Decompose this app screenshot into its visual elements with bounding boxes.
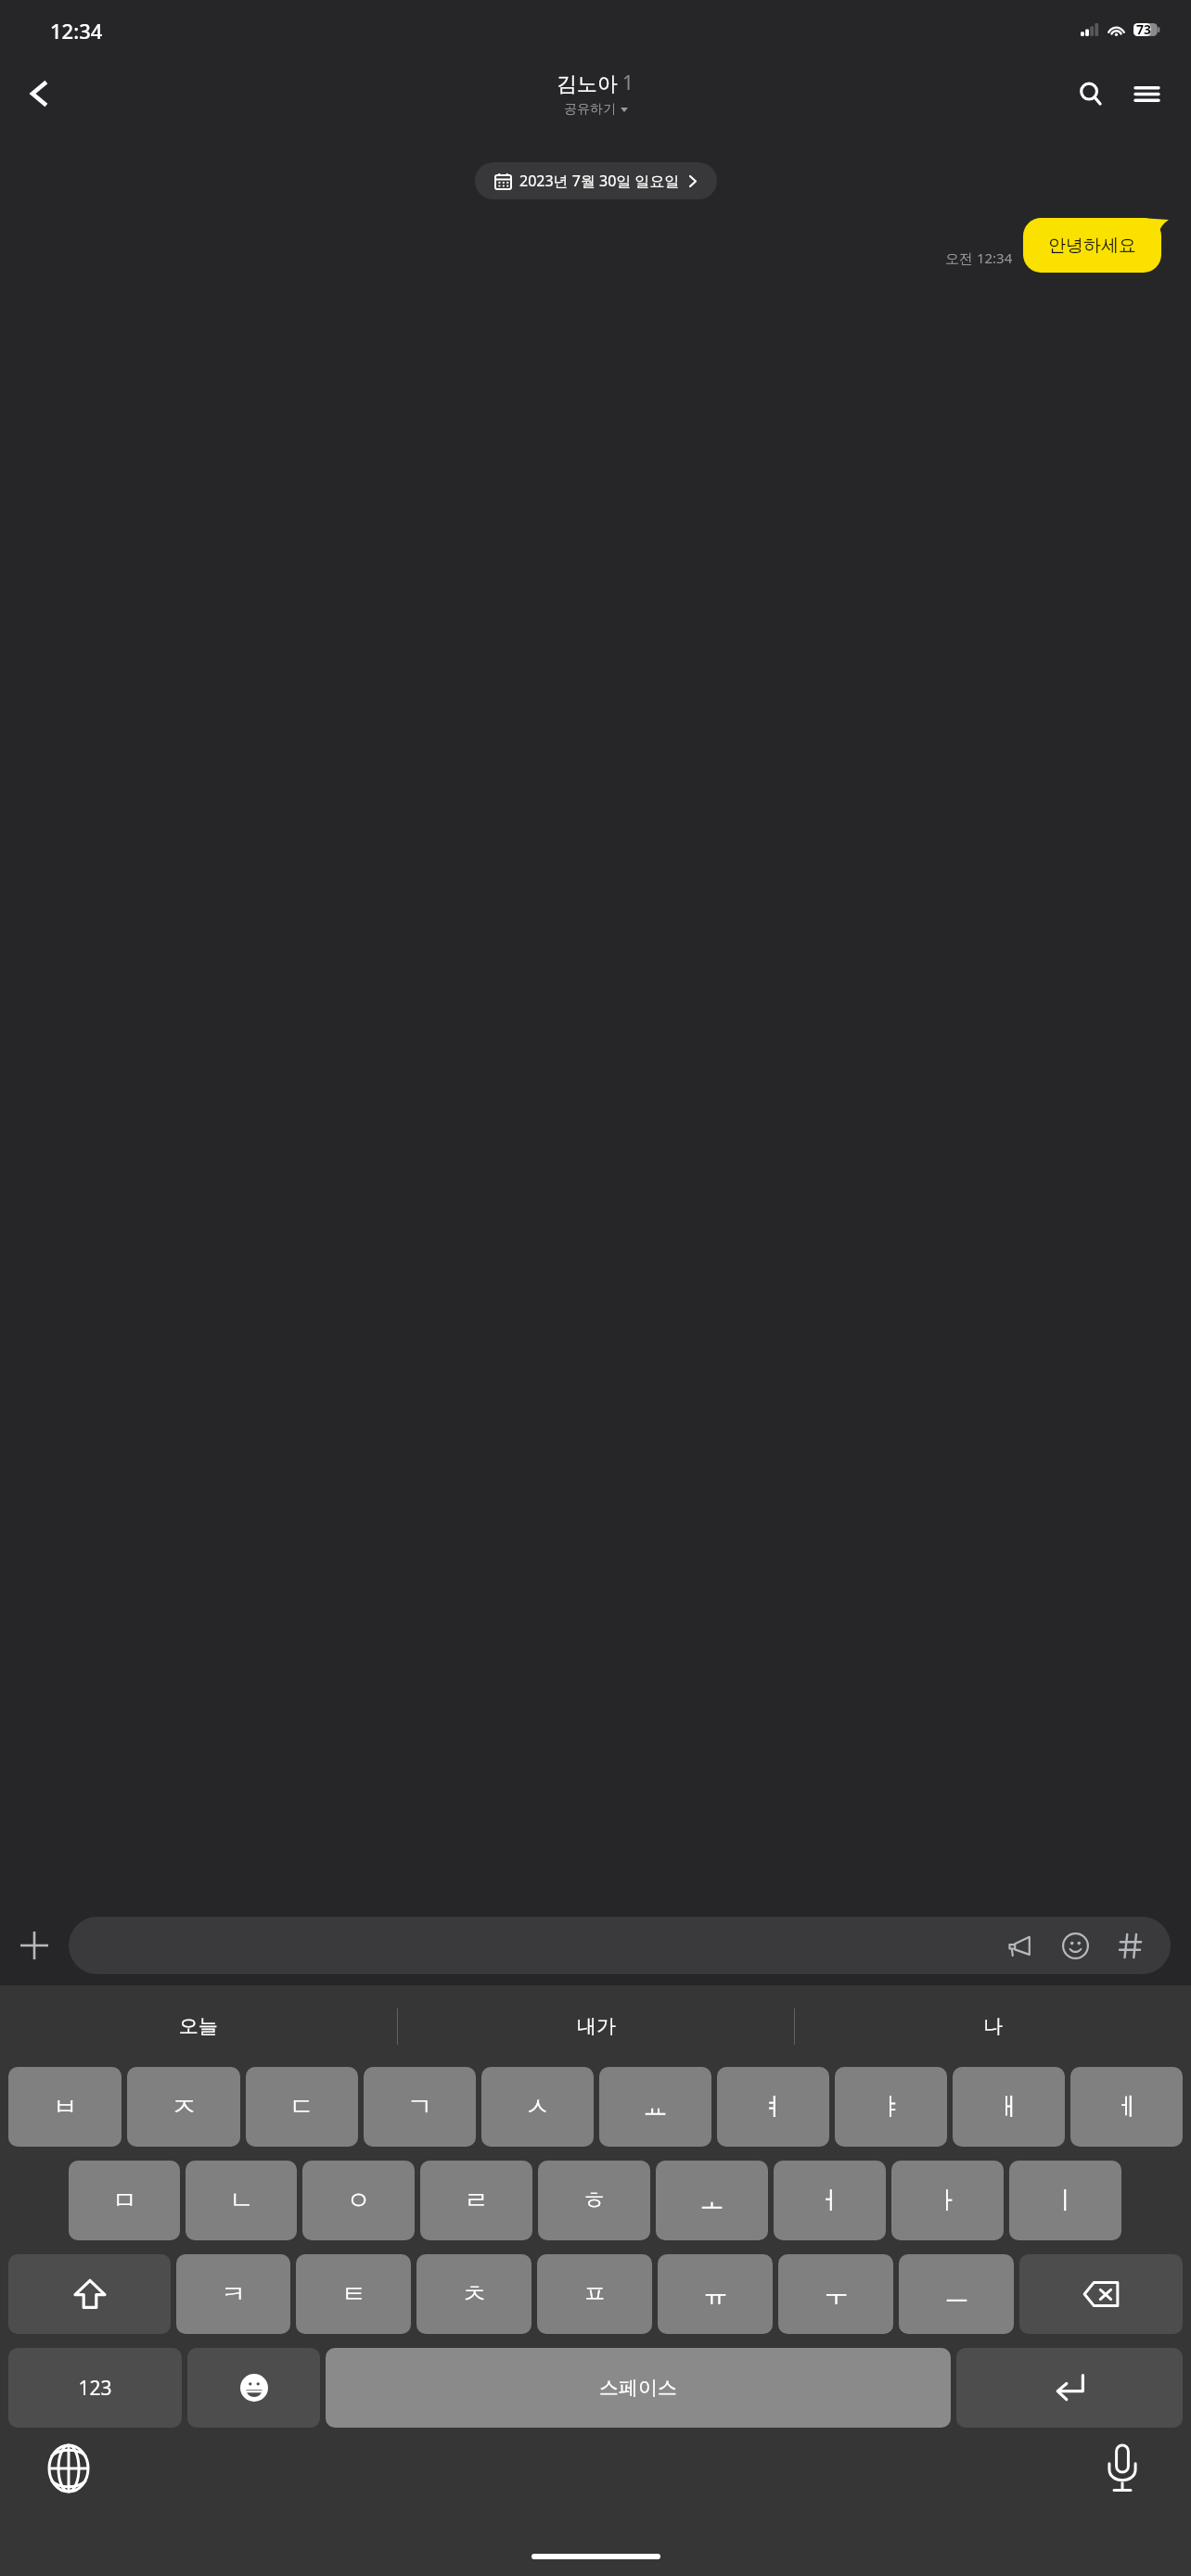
staticText: ㅁ [112,2185,137,2216]
button[interactable]: ㅈ [127,2067,240,2147]
button[interactable]: ㅂ [8,2067,122,2147]
button[interactable]: ㅐ [953,2067,1065,2147]
button[interactable]: 나 [795,1985,1191,2067]
staticText: ㅔ [1114,2091,1139,2123]
staticText: 스페이스 [599,2376,677,2400]
staticText: ㅌ [341,2278,366,2310]
staticText: 오전 12:34 [945,249,1013,267]
staticText: ㅗ [699,2185,724,2216]
staticText: ㅈ [172,2091,197,2123]
button[interactable]: Emoji [187,2348,320,2428]
button[interactable]: ㅓ [774,2161,886,2240]
button[interactable]: Enter [956,2348,1183,2428]
staticText: 123 [78,2375,112,2402]
button[interactable]: ㅗ [656,2161,768,2240]
button[interactable]: ㅛ [599,2067,711,2147]
staticText: ㅡ [944,2278,969,2310]
staticText: 김노아 [557,71,618,97]
staticText: 안녕하세요 [1048,235,1136,257]
staticText: 나 [983,2014,1003,2038]
button[interactable]: ㅍ [537,2254,652,2334]
staticText: ㅕ [761,2091,786,2123]
staticText: ㅛ [643,2091,668,2123]
staticText: 12:34 [50,17,103,45]
staticText: ㅠ [703,2278,728,2310]
staticText: ㅓ [817,2185,842,2216]
button[interactable]: Back [13,68,65,120]
staticText: 내가 [577,2014,616,2038]
staticText: ㄷ [289,2091,314,2123]
button[interactable]: 스페이스 [326,2348,951,2428]
button[interactable]: ㅜ [778,2254,893,2334]
staticText: 오늘 [179,2014,218,2038]
button[interactable]: 오늘 [0,1985,397,2067]
button[interactable]: Voice message [69,1917,1171,1974]
button[interactable]: ㄴ [186,2161,297,2240]
staticText: ㅇ [346,2185,371,2216]
staticText: ㅎ [582,2185,607,2216]
button[interactable]: ㅋ [176,2254,290,2334]
button[interactable]: Search [1067,70,1115,118]
staticText: ㅜ [824,2278,849,2310]
button[interactable]: ㅣ [1009,2161,1121,2240]
button[interactable]: ㅅ [481,2067,594,2147]
staticText: ㅂ [53,2091,78,2123]
staticText: ㅅ [525,2091,550,2123]
button[interactable]: ㄹ [420,2161,532,2240]
button[interactable]: ㅌ [296,2254,411,2334]
button[interactable]: Emoticon [1054,1924,1096,1967]
staticText: ㄱ [407,2091,432,2123]
button[interactable]: ㅑ [835,2067,947,2147]
staticText: ㄹ [464,2185,489,2216]
staticText: ㅐ [996,2091,1021,2123]
button[interactable]: 김노아 [557,70,634,118]
staticText: 1 [622,70,634,96]
button[interactable]: ㅁ [69,2161,180,2240]
button[interactable]: ㅎ [538,2161,650,2240]
button[interactable]: 2023년 7월 30일 일요일 [475,162,717,199]
staticText: 2023년 7월 30일 일요일 [519,171,680,191]
button[interactable]: ㅏ [891,2161,1004,2240]
staticText: ㅍ [583,2278,608,2310]
button[interactable]: Shift [8,2254,171,2334]
button[interactable]: Hashtag [1109,1924,1152,1967]
button[interactable]: ㄱ [364,2067,476,2147]
staticText: ㅏ [935,2185,960,2216]
button[interactable]: Backspace [1019,2254,1183,2334]
staticText: ㅑ [878,2091,903,2123]
staticText: 공유하기 [564,101,616,118]
staticText: ㅋ [221,2278,246,2310]
button[interactable]: ㅠ [658,2254,773,2334]
staticText: ㅊ [462,2278,487,2310]
button[interactable]: 내가 [398,1985,794,2067]
button[interactable]: ㅕ [717,2067,829,2147]
button[interactable]: Menu [1122,70,1171,118]
button[interactable]: ㄷ [246,2067,358,2147]
staticText: ㅣ [1053,2185,1078,2216]
button[interactable]: ㅔ [1070,2067,1183,2147]
button[interactable]: Add [0,1906,69,1985]
button[interactable]: ㅡ [899,2254,1014,2334]
button[interactable]: ㅇ [302,2161,415,2240]
button[interactable]: 123 [8,2348,182,2428]
button[interactable]: Voice message [998,1924,1041,1967]
button[interactable]: ㅊ [416,2254,531,2334]
button[interactable]: Voice input [1089,2435,1156,2502]
staticText: ㄴ [229,2185,254,2216]
button[interactable]: Change language [35,2435,102,2502]
staticText: 73 [1136,20,1152,38]
